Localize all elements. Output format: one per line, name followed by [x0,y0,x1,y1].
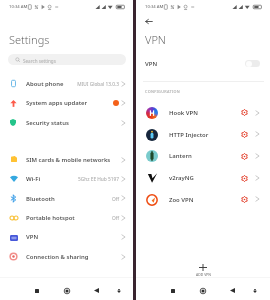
button[interactable]: Settings for Hook VPN [239,107,250,118]
staticText: CONFIGURATION [145,89,181,94]
button[interactable] [136,167,270,189]
button[interactable]: Back [226,284,240,298]
button[interactable]: Recents [30,284,44,298]
staticText: Zoo VPN [169,196,194,204]
button[interactable] [136,102,270,124]
button[interactable] [136,124,270,146]
button[interactable] [0,208,133,227]
staticText: Search settings [23,58,56,64]
staticText: HTTP Injector [169,131,209,139]
button[interactable] [8,54,126,65]
button[interactable] [0,170,133,189]
button[interactable] [136,145,270,167]
button[interactable] [0,74,133,93]
staticText: About phone [26,80,64,88]
button[interactable]: Settings for Zoo VPN [239,194,250,205]
button[interactable]: Add VPN [188,259,218,279]
staticText: Wi-Fi [26,175,41,183]
button[interactable] [0,189,133,208]
staticText: Off [111,196,119,203]
staticText: 10:34 AM [9,4,28,10]
staticText: System apps updater [26,99,88,107]
staticText: Portable hotspot [26,214,75,222]
staticText: Hook VPN [169,109,198,117]
button[interactable] [0,228,133,247]
button[interactable] [0,94,133,113]
button[interactable] [136,189,270,211]
staticText: VPN [145,60,158,68]
staticText: 5Ghz EE Hub 5197 [78,176,119,183]
button[interactable]: Home [60,284,74,298]
button[interactable]: Hide keyboard [249,285,261,297]
staticText: MIUI Global 13.0.3 [77,81,119,88]
staticText: Lantern [169,152,192,160]
staticText: Connection & sharing [26,253,89,261]
button[interactable]: Settings for v2rayNG [239,172,250,183]
button[interactable] [136,54,270,75]
button[interactable]: Back [142,15,156,29]
staticText: v2rayNG [169,174,194,182]
button[interactable] [0,247,133,266]
staticText: 10:34 AM [145,4,164,10]
staticText: Off [111,215,119,222]
staticText: VPN [26,233,39,241]
staticText: Settings [9,32,50,47]
button[interactable]: Settings for HTTP Injector [239,129,250,140]
button[interactable] [0,113,133,132]
button[interactable]: Recents [166,284,180,298]
staticText: Security status [26,119,69,127]
button[interactable]: Back [90,284,104,298]
button[interactable]: Settings for Lantern [239,151,250,162]
staticText: Bluetooth [26,195,55,203]
staticText: VPN [145,32,166,47]
button[interactable] [0,150,133,169]
staticText: ADD VPN [196,272,211,277]
staticText: SIM cards & mobile networks [26,156,111,164]
button[interactable]: Hide keyboard [113,285,125,297]
button[interactable]: Home [196,284,210,298]
